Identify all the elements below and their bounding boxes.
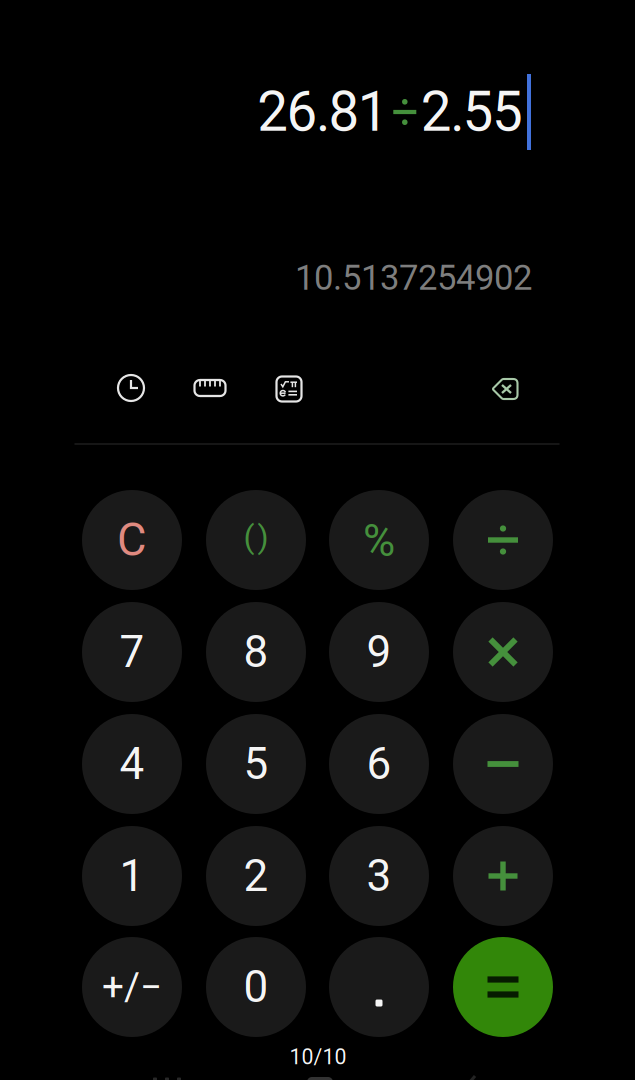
button[interactable]: History [109,366,153,410]
button[interactable] [453,714,553,814]
button[interactable] [453,937,553,1037]
staticText: 2 [243,850,268,902]
button[interactable]: ( [206,490,306,590]
button[interactable]: Scientific [267,367,311,411]
button[interactable]: 1 [82,826,182,926]
staticText: 0 [243,961,268,1013]
staticText: C [117,513,147,566]
staticText: ( [243,518,254,556]
button[interactable]: 8 [206,602,306,702]
staticText: 10/10 [289,1044,346,1069]
button[interactable]: 6 [329,714,429,814]
button[interactable] [453,602,553,702]
staticText: 26.81 [257,80,389,144]
staticText: 7 [119,626,144,678]
button[interactable]: Backspace [483,367,527,411]
staticText: 2.55 [421,80,523,144]
button[interactable]: 4 [82,714,182,814]
staticText: 4 [119,738,144,790]
button[interactable]: 9 [329,602,429,702]
staticText: 8 [243,626,268,678]
staticText: 6 [366,738,391,790]
staticText: 1 [119,850,144,902]
button[interactable]: 5 [206,714,306,814]
staticText: +/− [102,964,162,1010]
staticText: 5 [243,738,268,790]
staticText: 10.5137254902 [295,258,532,298]
staticText: 3 [366,850,391,902]
staticText: 9 [366,626,391,678]
staticText: % [363,515,395,567]
button[interactable] [453,490,553,590]
button[interactable] [329,937,429,1037]
staticText: ) [257,518,268,556]
button[interactable]: 7 [82,602,182,702]
button[interactable]: 0 [206,937,306,1037]
button[interactable]: +/− [82,937,182,1037]
button[interactable] [453,826,553,926]
button[interactable]: C [82,490,182,590]
button[interactable]: 2 [206,826,306,926]
button[interactable]: % [329,490,429,590]
button[interactable]: Unit converter [188,366,232,410]
button[interactable]: 3 [329,826,429,926]
